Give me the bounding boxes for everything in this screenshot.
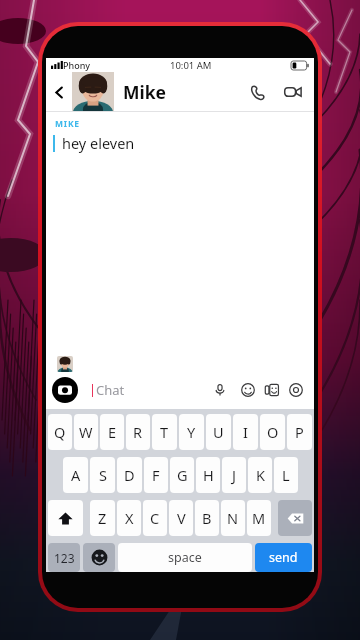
- button[interactable]: A: [63, 457, 88, 493]
- staticText: Y: [187, 422, 196, 442]
- button[interactable]: F: [144, 457, 168, 493]
- button[interactable]: Back: [46, 72, 72, 112]
- button[interactable]: Q: [48, 414, 72, 450]
- staticText: O: [267, 422, 279, 442]
- staticText: space: [168, 549, 202, 566]
- button[interactable]: W: [74, 414, 98, 450]
- staticText: P: [295, 422, 304, 442]
- staticText: U: [213, 422, 224, 442]
- button[interactable]: Voice message: [209, 379, 231, 401]
- button[interactable]: L: [274, 457, 298, 493]
- staticText: A: [71, 465, 81, 485]
- staticText: X: [125, 508, 134, 528]
- button[interactable]: I: [233, 414, 258, 450]
- button[interactable]: Location: [284, 378, 308, 402]
- button[interactable]: O: [260, 414, 285, 450]
- button[interactable]: Y: [179, 414, 204, 450]
- button[interactable]: S: [90, 457, 115, 493]
- staticText: MIKE: [55, 118, 80, 130]
- button[interactable]: Backspace: [278, 500, 312, 536]
- button[interactable]: 123: [48, 543, 80, 572]
- staticText: H: [203, 465, 214, 485]
- staticText: S: [99, 465, 107, 485]
- staticText: T: [160, 422, 169, 442]
- button[interactable]: N: [221, 500, 245, 536]
- button[interactable]: P: [287, 414, 312, 450]
- button[interactable]: M: [247, 500, 271, 536]
- staticText: Z: [98, 508, 107, 528]
- staticText: W: [79, 422, 93, 442]
- staticText: M: [252, 508, 266, 528]
- button[interactable]: Chat: [84, 378, 233, 402]
- button[interactable]: Emoji keyboard: [83, 543, 115, 572]
- button[interactable]: Shift: [48, 500, 83, 536]
- staticText: Q: [54, 422, 66, 442]
- staticText: hey eleven: [62, 133, 135, 153]
- staticText: I: [243, 422, 248, 442]
- button[interactable]: R: [126, 414, 150, 450]
- button[interactable]: J: [222, 457, 246, 493]
- staticText: N: [227, 508, 239, 528]
- staticText: Phony: [63, 59, 91, 71]
- button[interactable]: Emoji: [236, 378, 260, 402]
- staticText: R: [133, 422, 143, 442]
- button[interactable]: Stickers: [260, 378, 284, 402]
- staticText: E: [108, 422, 117, 442]
- staticText: F: [152, 465, 160, 485]
- staticText: Chat: [96, 381, 125, 399]
- button[interactable]: Camera: [52, 377, 78, 403]
- button[interactable]: E: [100, 414, 124, 450]
- staticText: L: [282, 465, 290, 485]
- staticText: 123: [54, 550, 75, 566]
- button[interactable]: U: [206, 414, 231, 450]
- button[interactable]: hey eleven: [46, 133, 314, 153]
- button[interactable]: D: [117, 457, 142, 493]
- button[interactable]: G: [170, 457, 194, 493]
- button[interactable]: T: [152, 414, 177, 450]
- staticText: V: [177, 508, 186, 528]
- button[interactable]: X: [117, 500, 141, 536]
- staticText: C: [150, 508, 160, 528]
- button[interactable]: K: [248, 457, 272, 493]
- button[interactable]: B: [195, 500, 219, 536]
- staticText: J: [232, 465, 236, 485]
- staticText: D: [124, 465, 135, 485]
- button[interactable]: send: [255, 543, 312, 572]
- button[interactable]: Voice call: [240, 75, 274, 109]
- staticText: B: [202, 508, 212, 528]
- staticText: G: [177, 465, 188, 485]
- button[interactable]: Z: [90, 500, 115, 536]
- button[interactable]: [72, 72, 114, 112]
- staticText: 10:01 AM: [170, 59, 212, 72]
- button[interactable]: space: [118, 543, 252, 572]
- staticText: send: [269, 549, 298, 566]
- staticText: Mike: [123, 80, 167, 104]
- button[interactable]: C: [143, 500, 167, 536]
- button[interactable]: H: [196, 457, 220, 493]
- button[interactable]: Video call: [276, 75, 310, 109]
- staticText: K: [256, 465, 265, 485]
- button[interactable]: V: [169, 500, 193, 536]
